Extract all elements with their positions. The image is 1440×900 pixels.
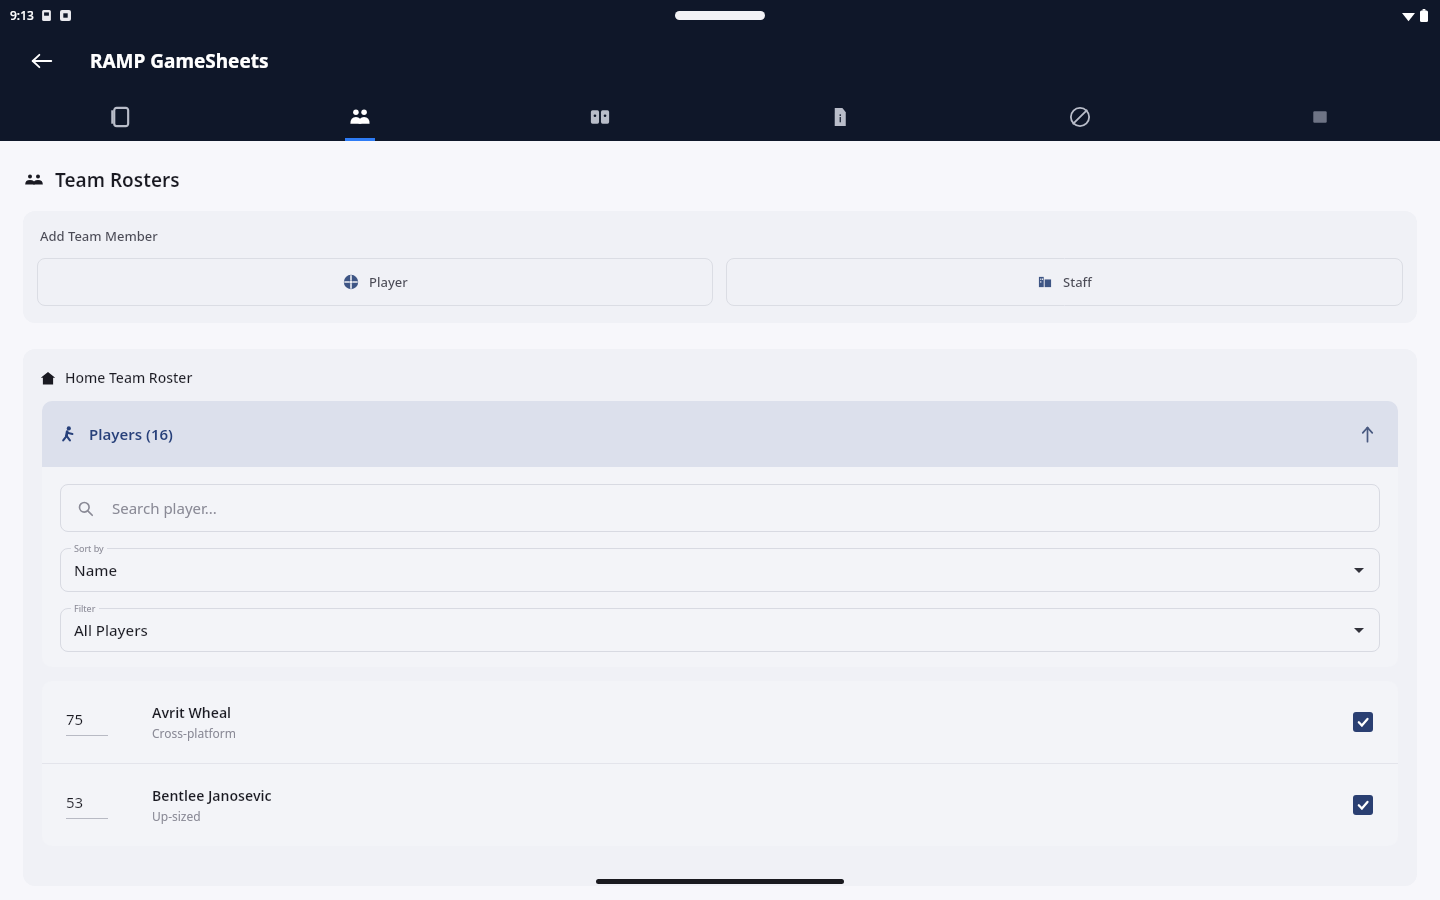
staticText: Bentlee Janosevic xyxy=(152,786,272,805)
button[interactable]: Players (16) xyxy=(42,401,1398,467)
button[interactable]: 75 xyxy=(42,681,1398,763)
staticText: Avrit Wheal xyxy=(152,703,232,722)
button[interactable]: Search player... xyxy=(60,484,1380,532)
button[interactable]: Staff xyxy=(726,258,1403,306)
button[interactable]: Rosters xyxy=(240,92,480,141)
button[interactable]: 53 xyxy=(42,764,1398,846)
staticText: Sort by xyxy=(74,542,104,554)
button[interactable]: Jerseys xyxy=(480,92,720,141)
button[interactable]: Back xyxy=(20,39,64,83)
staticText: Players (16) xyxy=(89,424,173,444)
staticText: 75 xyxy=(66,709,84,729)
button[interactable]: Game Sheet xyxy=(0,92,240,141)
staticText: 53 xyxy=(66,792,84,812)
staticText: Name xyxy=(74,560,118,580)
staticText: Search player... xyxy=(112,498,217,518)
button[interactable] xyxy=(60,608,1380,652)
staticText: Filter xyxy=(74,602,96,614)
button[interactable]: Toggle Avrit Wheal xyxy=(1350,709,1376,735)
staticText: Add Team Member xyxy=(40,227,158,245)
button[interactable]: Summary xyxy=(1200,92,1440,141)
staticText: Player xyxy=(369,273,408,291)
staticText: Staff xyxy=(1063,273,1092,291)
button[interactable]: Toggle Bentlee Janosevic xyxy=(1350,792,1376,818)
button[interactable]: Player xyxy=(37,258,713,306)
staticText: RAMP GameSheets xyxy=(90,48,269,74)
button[interactable] xyxy=(60,548,1380,592)
other: Collapse xyxy=(1354,421,1380,447)
staticText: 9:13 xyxy=(10,7,34,23)
button[interactable]: Penalties xyxy=(960,92,1200,141)
staticText: Up-sized xyxy=(152,808,201,824)
staticText: Cross-platform xyxy=(152,725,237,741)
staticText: All Players xyxy=(74,620,148,640)
staticText: Team Rosters xyxy=(55,167,180,193)
button[interactable]: Documents xyxy=(720,92,960,141)
staticText: Home Team Roster xyxy=(65,368,193,387)
